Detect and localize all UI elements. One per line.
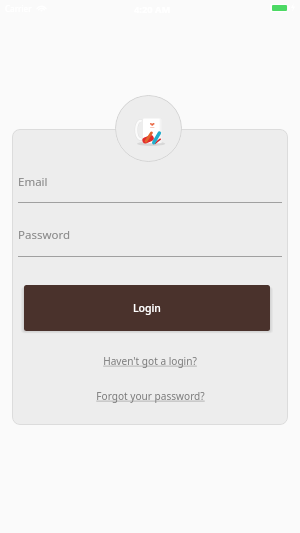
staticText: Login — [133, 301, 161, 315]
button[interactable]: Haven't got a login? — [70, 352, 230, 370]
button[interactable]: Email — [18, 166, 282, 202]
button[interactable]: Forgot your password? — [70, 387, 230, 405]
staticText: Haven't got a login? — [103, 354, 197, 368]
button[interactable]: Password — [18, 220, 282, 256]
staticText: Password — [18, 227, 71, 243]
staticText: Email — [18, 174, 48, 190]
other: App logo — [115, 95, 182, 162]
button[interactable]: Login — [24, 285, 270, 331]
staticText: Forgot your password? — [96, 389, 205, 403]
